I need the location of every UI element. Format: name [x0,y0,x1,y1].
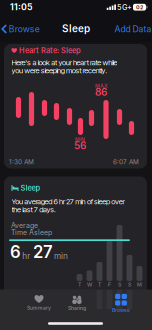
staticText: Sleep [62,22,90,35]
staticText: Browse [9,24,40,34]
staticText: S [128,281,131,288]
staticText: 56 [74,139,86,152]
staticText: Summary [27,305,51,311]
staticText: 5G+ [117,3,132,12]
staticText: hr [22,251,30,261]
staticText: Time Asleep [11,228,52,237]
staticText: min [54,251,68,261]
staticText: Here's a look at your heart rate while [11,58,117,67]
button[interactable]: Summary [27,295,51,311]
staticText: Add Data [114,24,151,34]
staticText: you were sleeping most recently. [11,66,107,75]
staticText: 86 [95,86,107,98]
staticText: 6:07 AM [113,158,139,166]
button[interactable]: Browse [112,294,130,313]
staticText: the last 7 days. [11,205,56,214]
staticText: 1:30 AM [9,158,34,166]
staticText: Browse [112,307,130,313]
staticText: Sleep [20,183,40,192]
button[interactable] [4,176,147,316]
button[interactable]: Add Data [114,24,151,34]
staticText: Heart Rate: Sleep [19,46,81,55]
staticText: MAX [95,83,108,89]
staticText: T [98,281,101,288]
staticText: S [118,281,121,288]
staticText: F [108,281,111,288]
staticText: T [78,281,81,288]
staticText: 02 [136,4,143,11]
button[interactable]: Sharing [68,296,86,311]
staticText: Sharing [68,305,86,311]
button[interactable]: Browse [2,24,40,34]
staticText: 27 [33,242,53,262]
staticText: W [87,281,92,288]
staticText: MIN [75,136,85,142]
staticText: 11:05 [10,2,33,12]
staticText: You averaged 6 hr 27 min of sleep over [11,197,124,206]
staticText: Average [11,221,38,230]
staticText: 6 [10,242,21,262]
staticText: M [137,281,142,288]
button[interactable] [4,44,147,168]
